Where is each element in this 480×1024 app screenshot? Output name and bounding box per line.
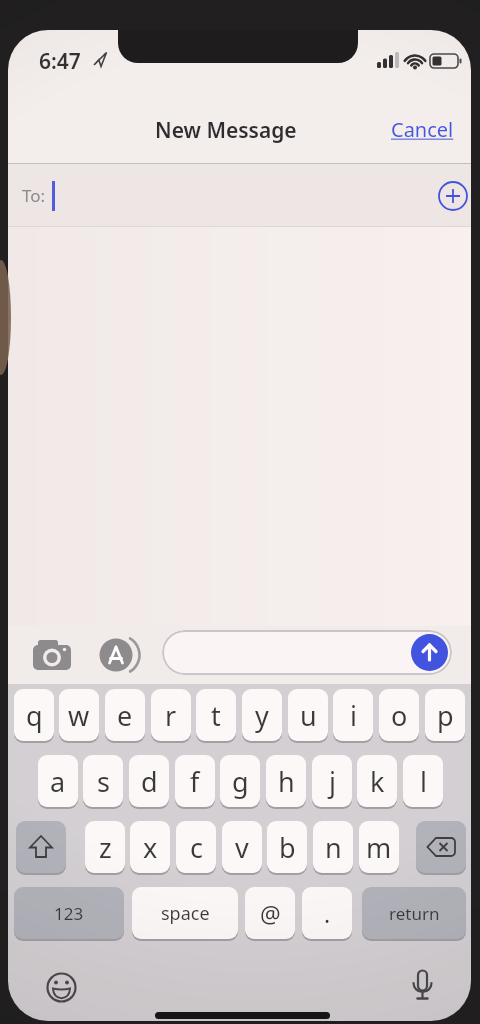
- button[interactable]: o: [379, 689, 419, 741]
- staticText: j: [329, 763, 336, 800]
- staticText: q: [26, 697, 43, 734]
- button[interactable]: [16, 821, 66, 873]
- button[interactable]: v: [222, 821, 262, 873]
- staticText: a: [50, 763, 66, 800]
- button[interactable]: l: [403, 755, 443, 807]
- button[interactable]: d: [129, 755, 169, 807]
- staticText: e: [117, 697, 133, 734]
- button[interactable]: j: [312, 755, 352, 807]
- button[interactable]: u: [288, 689, 328, 741]
- button[interactable]: [407, 970, 439, 1010]
- button[interactable]: Cancel: [391, 116, 454, 143]
- staticText: 6:47: [39, 47, 81, 76]
- button[interactable]: .: [302, 887, 352, 939]
- button[interactable]: q: [14, 689, 54, 741]
- button[interactable]: r: [151, 689, 191, 741]
- button[interactable]: e: [105, 689, 145, 741]
- staticText: o: [391, 697, 408, 734]
- staticText: w: [68, 697, 90, 734]
- staticText: h: [278, 763, 295, 800]
- staticText: 123: [54, 902, 84, 925]
- staticText: z: [99, 829, 112, 866]
- button[interactable]: [437, 180, 469, 212]
- button[interactable]: To:: [8, 164, 471, 227]
- staticText: f: [190, 763, 200, 800]
- staticText: t: [211, 697, 221, 734]
- staticText: n: [325, 829, 342, 866]
- button[interactable]: return: [362, 887, 466, 939]
- staticText: d: [141, 763, 158, 800]
- button[interactable]: t: [196, 689, 236, 741]
- button[interactable]: y: [242, 689, 282, 741]
- button[interactable]: 123: [14, 887, 124, 939]
- button[interactable]: c: [176, 821, 216, 873]
- button[interactable]: s: [83, 755, 123, 807]
- button[interactable]: w: [59, 689, 99, 741]
- button[interactable]: @: [245, 887, 295, 939]
- staticText: New Message: [155, 116, 297, 145]
- button[interactable]: m: [359, 821, 399, 873]
- staticText: s: [97, 763, 110, 800]
- button[interactable]: [30, 634, 82, 676]
- staticText: r: [165, 697, 177, 734]
- button[interactable]: h: [266, 755, 306, 807]
- staticText: p: [437, 697, 454, 734]
- staticText: .: [324, 898, 331, 929]
- button[interactable]: [411, 634, 448, 671]
- staticText: Cancel: [391, 116, 454, 143]
- button[interactable]: f: [175, 755, 215, 807]
- button[interactable]: z: [85, 821, 125, 873]
- button[interactable]: [96, 634, 160, 678]
- staticText: u: [300, 697, 317, 734]
- staticText: c: [190, 829, 203, 866]
- staticText: To:: [22, 184, 46, 207]
- staticText: i: [350, 697, 357, 734]
- button[interactable]: k: [357, 755, 397, 807]
- button[interactable]: x: [130, 821, 170, 873]
- button[interactable]: n: [313, 821, 353, 873]
- staticText: return: [389, 902, 440, 925]
- button[interactable]: [416, 821, 466, 873]
- button[interactable]: space: [132, 887, 238, 939]
- button[interactable]: p: [425, 689, 465, 741]
- staticText: space: [161, 901, 210, 926]
- staticText: x: [143, 829, 158, 866]
- button[interactable]: [46, 972, 78, 1004]
- button[interactable]: i: [333, 689, 373, 741]
- staticText: g: [232, 763, 249, 800]
- staticText: k: [370, 763, 385, 800]
- staticText: @: [260, 898, 281, 929]
- staticText: m: [366, 829, 392, 866]
- staticText: v: [235, 829, 249, 866]
- button[interactable]: [162, 630, 452, 675]
- staticText: b: [279, 829, 296, 866]
- button[interactable]: a: [38, 755, 78, 807]
- staticText: l: [420, 763, 427, 800]
- button[interactable]: b: [267, 821, 307, 873]
- staticText: y: [255, 697, 269, 734]
- button[interactable]: g: [220, 755, 260, 807]
